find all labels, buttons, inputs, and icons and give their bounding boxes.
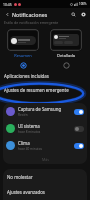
button[interactable]: UI sistema — [3, 120, 87, 137]
staticText: hace 40 minutos — [18, 147, 43, 151]
staticText: hace 8 minutos — [18, 130, 41, 134]
staticText: 10:45 — [3, 2, 12, 7]
button[interactable]: Ajustes avanzados — [3, 184, 87, 199]
button[interactable]: Back — [2, 9, 12, 19]
button[interactable]: Ajustes de resumen emergente — [0, 84, 90, 96]
button[interactable]: Clima — [3, 137, 87, 154]
staticText: Detallada — [57, 53, 75, 58]
button[interactable]: No molestar — [3, 169, 87, 184]
staticText: Ajustes de resumen emergente — [4, 87, 69, 93]
staticText: Aplicaciones incluidas — [4, 73, 49, 79]
staticText: Resumen — [14, 53, 32, 58]
button[interactable]: Search — [68, 9, 78, 19]
staticText: Clima — [18, 140, 30, 146]
staticText: Más — [42, 157, 49, 162]
staticText: Ajustes avanzados — [7, 189, 45, 195]
staticText: 100% — [79, 2, 87, 6]
button[interactable]: Captura de Samsung — [3, 103, 87, 120]
button[interactable]: More options — [78, 9, 88, 19]
staticText: Notificaciones — [12, 11, 48, 18]
staticText: Recién — [18, 113, 28, 117]
staticText: No molestar — [7, 174, 33, 180]
staticText: UI sistema — [18, 123, 40, 129]
button[interactable]: Detallada — [50, 29, 82, 69]
staticText: Estilo de notificación emergente — [4, 20, 59, 25]
staticText: Captura de Samsung — [18, 106, 62, 112]
button[interactable]: Resumen — [7, 29, 39, 69]
